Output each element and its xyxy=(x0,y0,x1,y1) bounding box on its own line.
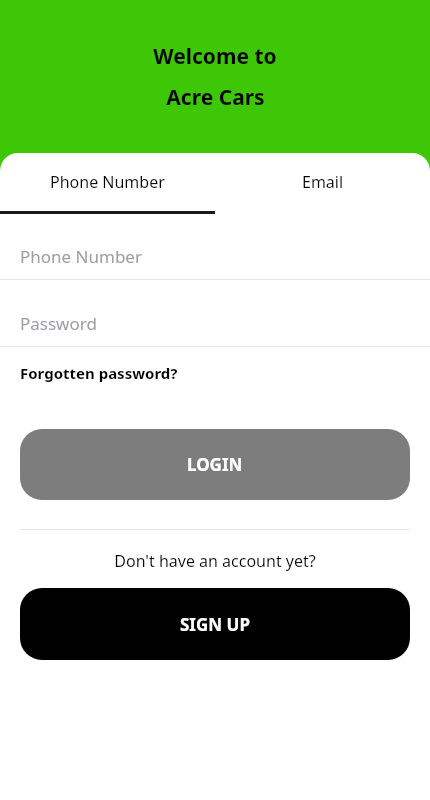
staticText: LOGIN xyxy=(187,453,243,476)
staticText: Password xyxy=(20,312,97,335)
staticText: SIGN UP xyxy=(180,613,250,636)
staticText: Forgotten password? xyxy=(20,363,178,383)
button[interactable]: Phone Number xyxy=(0,153,215,211)
button[interactable]: Sign up xyxy=(20,588,410,660)
staticText: Welcome to xyxy=(153,42,277,71)
staticText: Don't have an account yet? xyxy=(114,550,316,572)
button[interactable]: Phone Number xyxy=(0,234,430,279)
button[interactable]: LOGIN xyxy=(20,429,410,500)
button[interactable]: Email xyxy=(215,153,430,211)
button[interactable]: Password xyxy=(0,301,430,346)
staticText: Email xyxy=(302,171,344,193)
staticText: Phone Number xyxy=(50,171,165,193)
staticText: Phone Number xyxy=(20,245,142,268)
staticText: Acre Cars xyxy=(166,83,265,112)
button[interactable]: Forgotten password? xyxy=(0,359,198,387)
